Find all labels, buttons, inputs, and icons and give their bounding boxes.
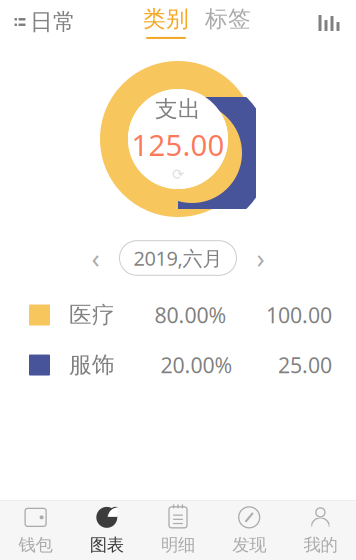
button[interactable]: 明细 [142, 501, 214, 560]
button[interactable]: 服饰 [0, 340, 356, 390]
staticText: 类别 [143, 5, 189, 33]
button[interactable]: Next month [250, 246, 270, 270]
button[interactable]: Statistics [318, 6, 356, 38]
staticText: › [256, 240, 264, 276]
staticText: 发现 [232, 534, 266, 556]
staticText: 我的 [303, 534, 337, 556]
staticText: 20.00% [160, 351, 232, 379]
button[interactable]: 类别 [143, 5, 189, 39]
staticText: 图表 [90, 534, 124, 556]
staticText: 日常 [30, 8, 76, 36]
staticText: 标签 [205, 5, 251, 33]
staticText: 25.00 [278, 351, 332, 379]
button[interactable]: 图表 [71, 501, 142, 560]
staticText: 125.00 [131, 125, 224, 164]
staticText: 支出 [155, 95, 201, 123]
button[interactable]: 发现 [214, 501, 285, 560]
button[interactable]: 标签 [189, 5, 251, 39]
staticText: 2019,六月 [133, 245, 222, 271]
staticText: 明细 [161, 534, 195, 556]
button[interactable]: 2019,六月 [119, 241, 236, 275]
button[interactable]: Previous month [85, 246, 105, 270]
staticText: 100.00 [266, 301, 332, 329]
staticText: 服饰 [69, 351, 115, 379]
staticText: ‹ [91, 240, 99, 276]
button[interactable]: 医疗 [0, 290, 356, 340]
button[interactable]: 日常 [0, 2, 76, 42]
button[interactable]: 我的 [285, 501, 356, 560]
staticText: ⟳ [172, 166, 184, 183]
staticText: 医疗 [69, 301, 115, 329]
button[interactable]: 钱包 [0, 501, 71, 560]
staticText: 钱包 [19, 534, 53, 556]
staticText: 80.00% [154, 301, 226, 329]
